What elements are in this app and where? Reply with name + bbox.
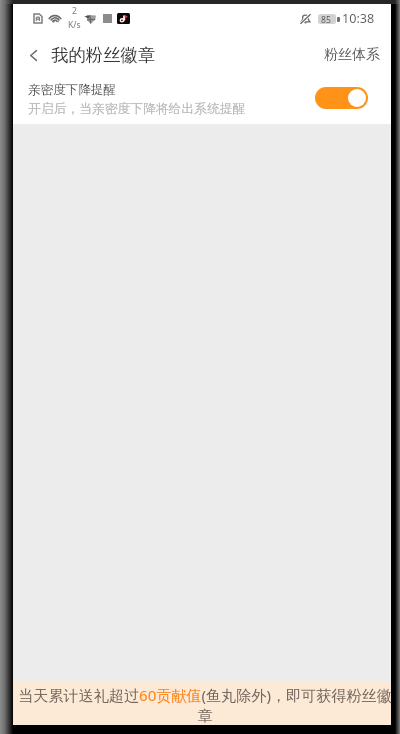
staticText: 亲密度下降提醒 (28, 82, 117, 98)
staticText: 10:38 (342, 10, 375, 27)
staticText: 粉丝体系 (324, 46, 380, 64)
staticText: 开启后，当亲密度下降将给出系统提醒 (28, 101, 246, 117)
staticText: 当天累计送礼超过60贡献值(鱼丸除外)，即可获得粉丝徽章 (17, 685, 393, 725)
staticText: 2 (72, 5, 77, 17)
button[interactable]: 粉丝体系 (310, 34, 391, 76)
staticText: 85 (321, 14, 331, 24)
button[interactable]: 亲密度下降提醒 (13, 78, 391, 124)
button[interactable]: Back (16, 38, 50, 72)
staticText: K/s (68, 19, 81, 31)
button[interactable]: Toggle intimacy reminder (315, 87, 368, 109)
staticText: 我的粉丝徽章 (51, 44, 156, 66)
